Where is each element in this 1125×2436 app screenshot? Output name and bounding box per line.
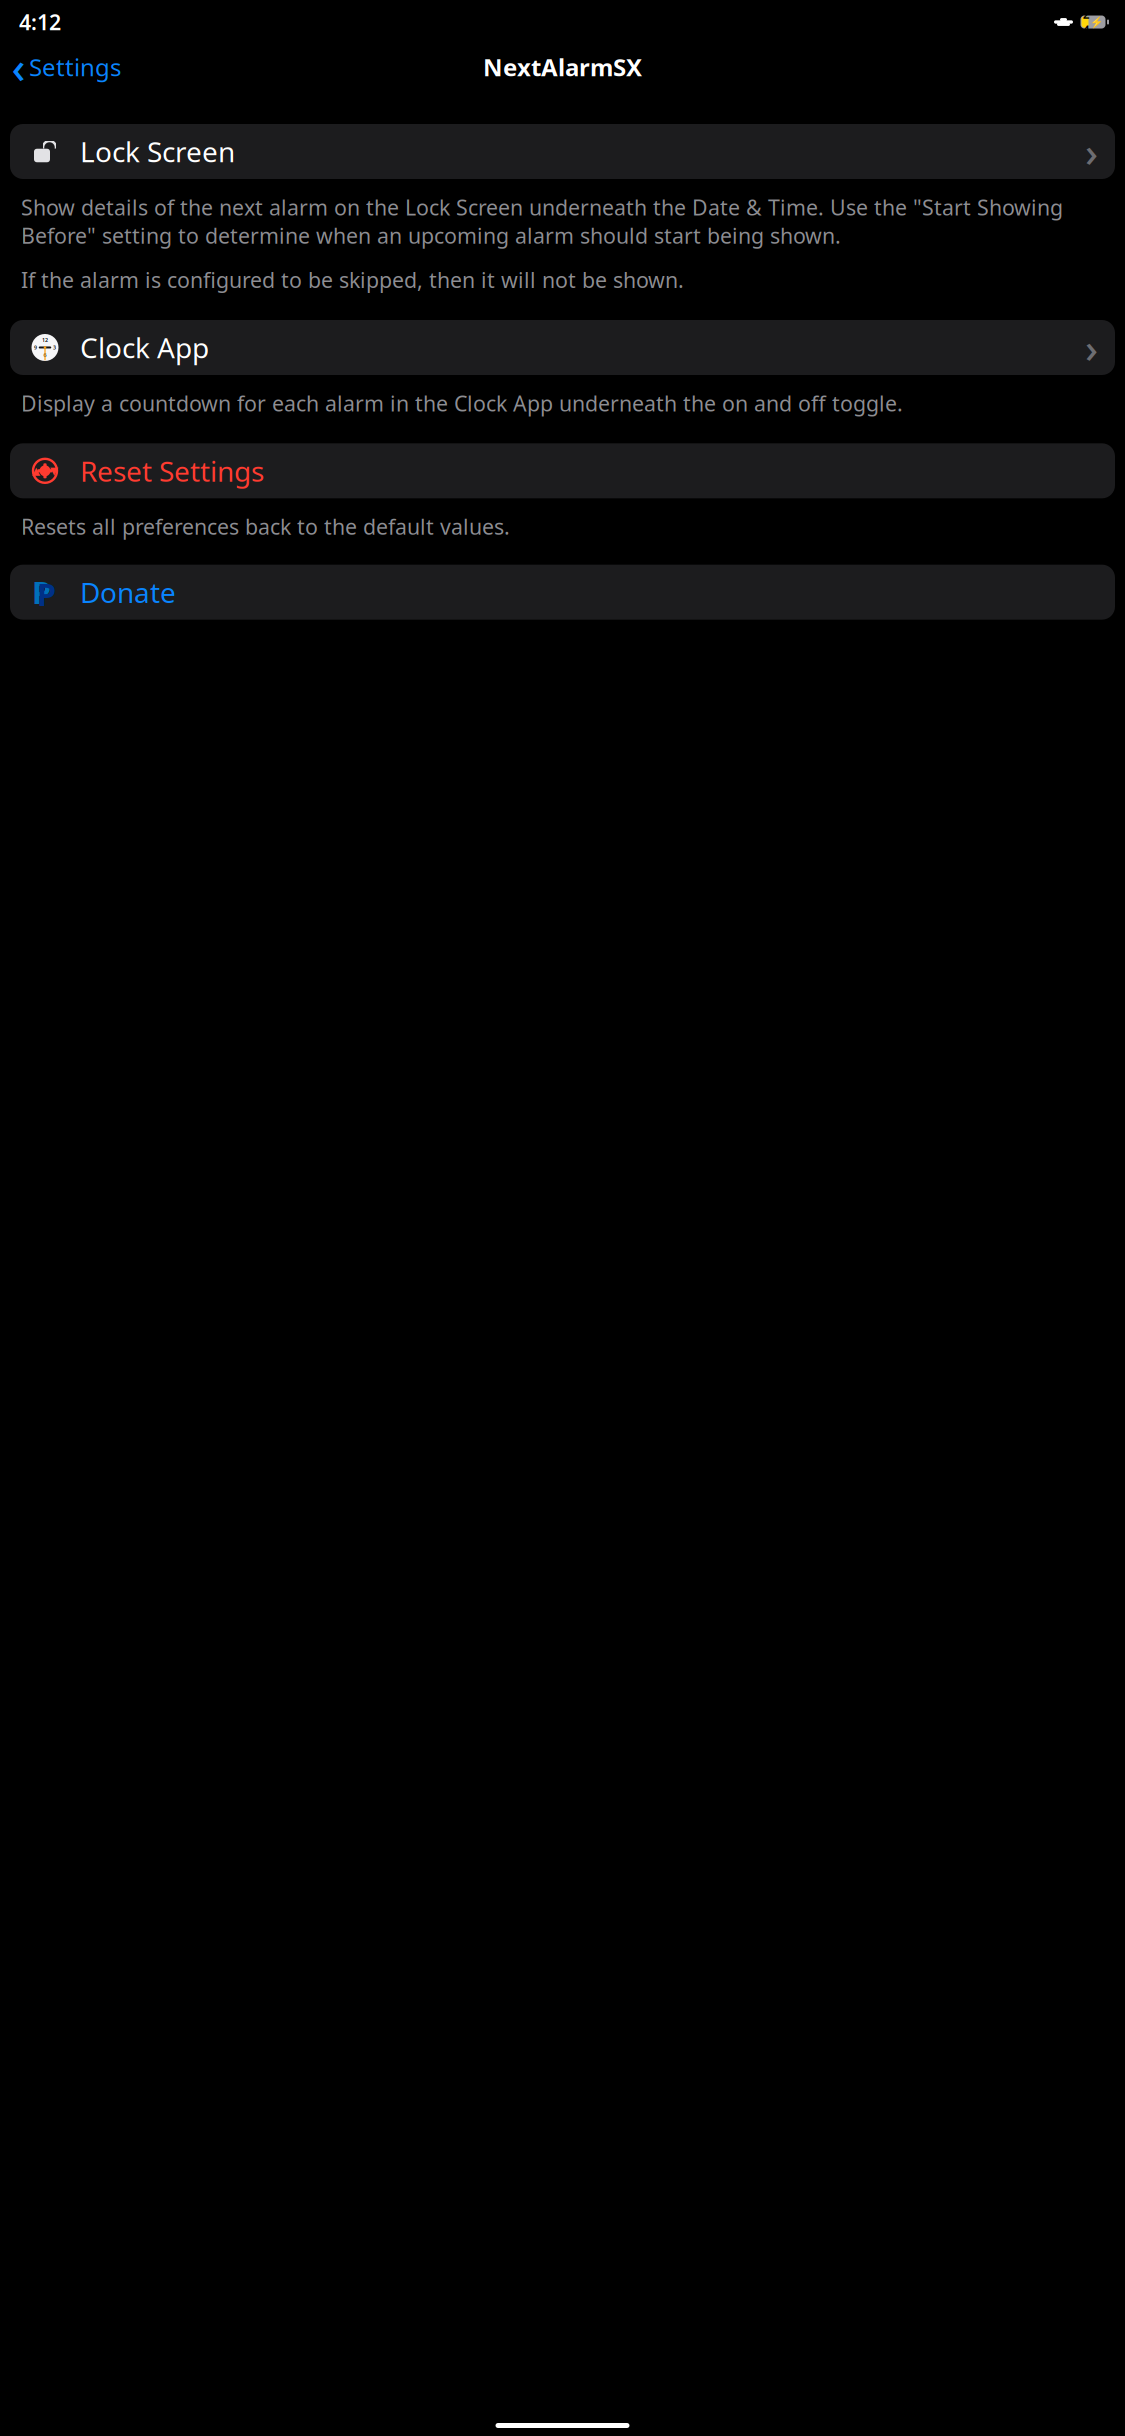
staticText: Donate (80, 574, 176, 611)
button[interactable]: P (10, 565, 1115, 620)
staticText: 3 (53, 344, 56, 351)
staticText: Resets all preferences back to the defau… (21, 512, 510, 541)
staticText: P (37, 574, 56, 614)
staticText: 24 (1083, 6, 1090, 38)
staticText: Display a countdown for each alarm in th… (21, 389, 903, 417)
staticText: ⚡ (1090, 16, 1103, 28)
button[interactable]: Lock Screen (10, 124, 1115, 179)
staticText: ‹ (11, 39, 25, 95)
staticText: Show details of the next alarm on the Lo… (21, 193, 1063, 250)
button[interactable]: 12 (10, 320, 1115, 375)
staticText: ▼ (50, 465, 58, 477)
staticText: › (1085, 125, 1098, 178)
staticText: 9 (34, 344, 37, 351)
staticText: › (1085, 321, 1098, 374)
staticText: Settings (29, 51, 121, 83)
button[interactable]: ‹ (6, 44, 131, 90)
staticText: Clock App (80, 329, 209, 366)
staticText: Reset Settings (80, 452, 264, 489)
staticText: P (32, 572, 51, 612)
staticText: If the alarm is configured to be skipped… (21, 266, 684, 294)
button[interactable]: ▲ (10, 443, 1115, 498)
staticText: 4:12 (19, 8, 61, 36)
staticText: Lock Screen (80, 133, 235, 170)
staticText: 12 (42, 336, 48, 344)
staticText: 6 (43, 351, 46, 358)
staticText: NextAlarmSX (483, 51, 642, 83)
staticText: ▲ (32, 465, 40, 477)
